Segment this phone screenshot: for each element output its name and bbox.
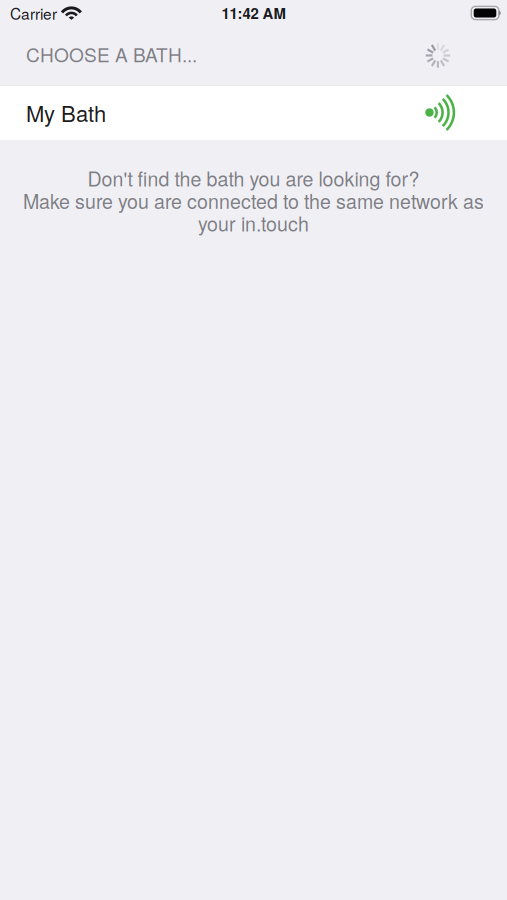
staticText: My Bath [26, 97, 106, 128]
staticText: your in.touch [198, 209, 309, 237]
button[interactable]: My Bath [0, 85, 507, 140]
staticText: Carrier [10, 2, 57, 24]
staticText: Make sure you are connected to the same … [23, 186, 484, 215]
staticText: Don't find the bath you are looking for? [87, 164, 419, 192]
staticText: CHOOSE A BATH... [26, 40, 197, 68]
staticText: 11:42 AM [221, 2, 285, 24]
